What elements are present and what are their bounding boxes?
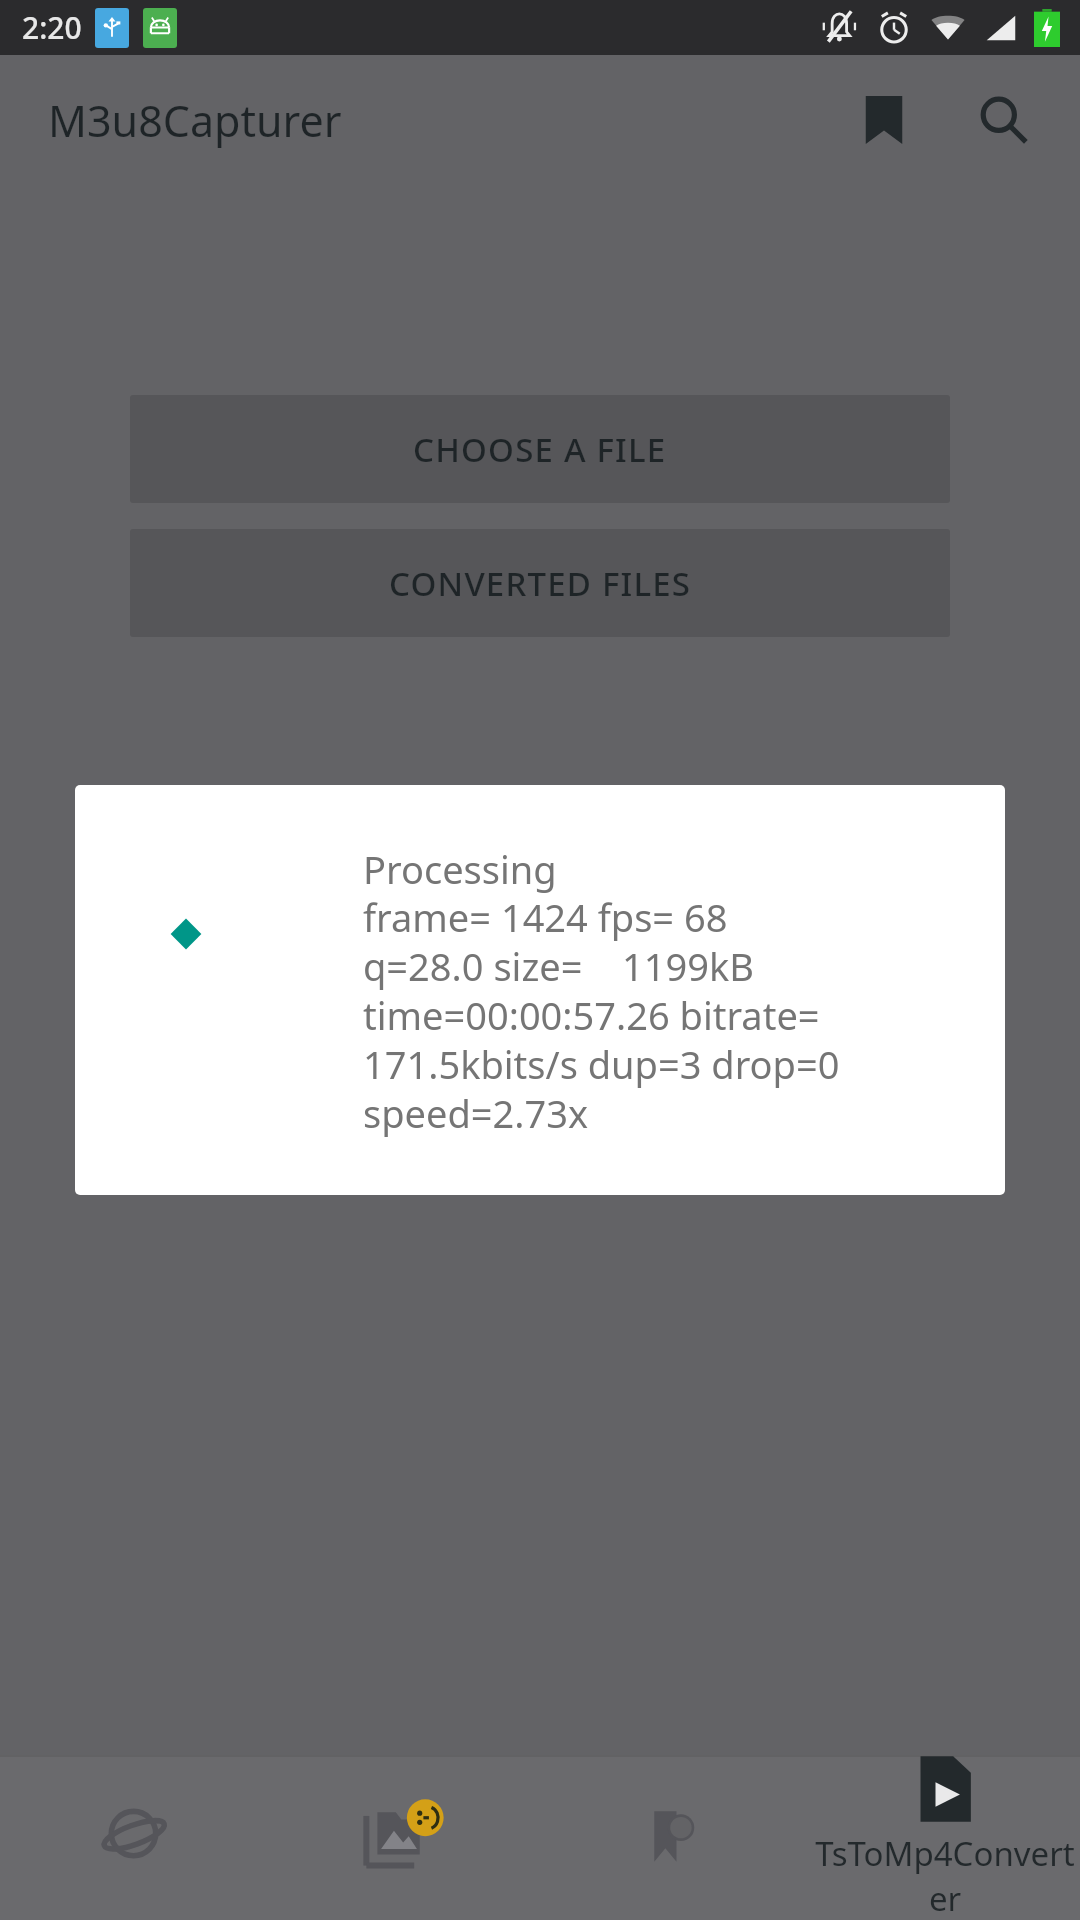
button[interactable]: Search (956, 72, 1052, 168)
button[interactable]: CONVERTED FILES (130, 529, 950, 637)
button[interactable]: App (540, 1755, 810, 1920)
staticText: CONVERTED FILES (389, 561, 692, 606)
button[interactable]: App (0, 1755, 270, 1920)
button[interactable]: CHOOSE A FILE (130, 395, 950, 503)
button[interactable]: Bookmarks (836, 72, 932, 168)
staticText: CHOOSE A FILE (413, 427, 667, 472)
staticText: TsToMp4Converter (810, 1831, 1080, 1920)
staticText: Processing frame= 1424 fps= 68 q=28.0 si… (363, 843, 840, 1140)
staticText: 2:20 (22, 7, 82, 48)
staticText: M3u8Capturer (48, 91, 342, 150)
button[interactable]: TsToMp4Converter (810, 1755, 1080, 1920)
button[interactable]: App (270, 1755, 540, 1920)
